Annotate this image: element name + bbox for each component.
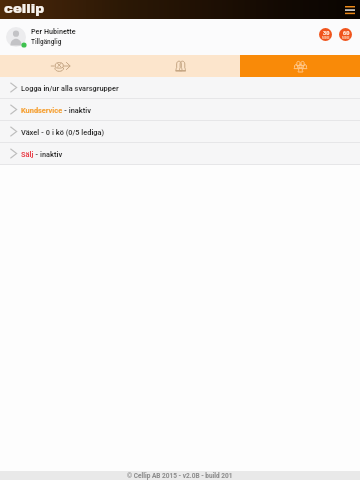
- button[interactable]: Växel - 0 i kö (0/5 lediga): [0, 121, 360, 142]
- staticText: 30: [323, 30, 330, 36]
- button[interactable]: Kundservice - inaktiv: [0, 99, 360, 120]
- button[interactable]: Contacts: [120, 55, 240, 77]
- staticText: Tillgänglig: [31, 38, 62, 46]
- staticText: MINS: [322, 36, 330, 40]
- staticText: MINS: [342, 36, 350, 40]
- staticText: Logga in/ur alla svarsgrupper: [21, 84, 119, 93]
- staticText: 60: [343, 30, 350, 36]
- button[interactable]: Call divert: [0, 55, 120, 77]
- staticText: Sälj - inaktiv: [21, 150, 63, 159]
- staticText: cellip: [4, 1, 45, 16]
- staticText: Kundservice - inaktiv: [21, 106, 91, 115]
- button[interactable]: Logga in/ur alla svarsgrupper: [0, 77, 360, 98]
- button[interactable]: 60 minutes: [339, 28, 352, 41]
- button[interactable]: 30 minutes: [319, 28, 332, 41]
- staticText: Per Hubinette: [31, 27, 76, 35]
- staticText: Växel - 0 i kö (0/5 lediga): [21, 128, 105, 137]
- button[interactable]: Menu: [343, 3, 357, 17]
- button[interactable]: Sälj - inaktiv: [0, 143, 360, 164]
- staticText: © Cellip AB 2015 - v2.0B - build 201: [127, 472, 233, 480]
- button[interactable]: Groups: [240, 55, 360, 77]
